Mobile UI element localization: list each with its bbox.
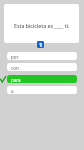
staticText: Esta bicicleta es ____ tí. [14,22,70,29]
staticText: 1 [39,41,43,48]
button[interactable]: a [7,86,77,94]
button[interactable]: para [7,75,77,83]
button[interactable]: con [7,63,77,71]
staticText: por [11,54,19,60]
staticText: a [11,88,14,94]
other: Correct answer [0,76,6,83]
button[interactable]: por [7,52,77,60]
staticText: con [11,65,19,71]
staticText: para [11,77,21,83]
button[interactable]: 1 [37,41,44,48]
